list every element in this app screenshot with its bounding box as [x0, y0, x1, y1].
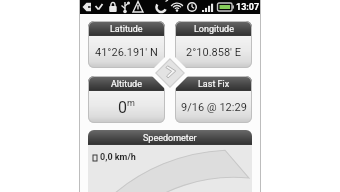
- staticText: 0: [118, 98, 127, 117]
- button[interactable]: Altitude: [88, 76, 165, 123]
- staticText: m: [127, 98, 135, 109]
- staticText: Altitude: [111, 79, 142, 90]
- button[interactable]: Longitude: [175, 21, 252, 68]
- button[interactable]: Next: [149, 52, 191, 94]
- staticText: 9/16 @ 12:29: [181, 101, 247, 114]
- button[interactable]: Latitude: [88, 21, 165, 68]
- button[interactable]: Last Fix: [175, 76, 252, 123]
- staticText: Longitude: [194, 24, 234, 35]
- staticText: Speedometer: [143, 133, 197, 144]
- staticText: 2°10.858' E: [186, 46, 242, 59]
- staticText: 41°26.191' N: [95, 46, 158, 59]
- staticText: Latitude: [110, 24, 143, 35]
- staticText: 0,0 km/h: [100, 152, 136, 163]
- button[interactable]: Speedometer: [88, 130, 252, 192]
- staticText: 13:07: [236, 2, 260, 13]
- staticText: Last Fix: [198, 79, 230, 90]
